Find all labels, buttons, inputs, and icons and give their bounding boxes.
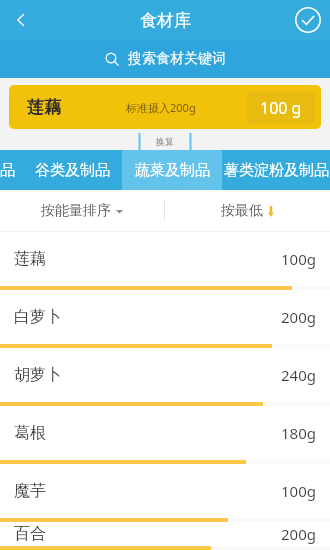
button[interactable]: 搜索食材关键词 — [0, 40, 330, 78]
staticText: 100g — [281, 249, 316, 269]
staticText: 白萝卜 — [14, 307, 62, 327]
staticText: 莲藕 — [14, 249, 46, 269]
button[interactable]: 胡萝卜 — [0, 348, 330, 406]
staticText: 莲藕 — [27, 97, 61, 118]
button[interactable]: 葛根 — [0, 406, 330, 464]
button[interactable]: 蔬菜及制品 — [122, 150, 222, 190]
staticText: 标准摄入200g — [126, 100, 196, 115]
staticText: 按最低 — [221, 202, 263, 220]
button[interactable]: 按能量排序 — [0, 190, 164, 232]
staticText: 180g — [281, 423, 316, 443]
button[interactable]: 换算 — [139, 133, 191, 150]
button[interactable]: Confirm — [286, 0, 330, 40]
staticText: 按能量排序 — [41, 202, 111, 220]
button[interactable]: 魔芋 — [0, 464, 330, 522]
staticText: 葛根 — [14, 423, 46, 443]
button[interactable]: 莲藕 — [0, 232, 330, 290]
staticText: 谷类及制品 — [35, 161, 110, 180]
button[interactable]: Back — [0, 0, 42, 40]
button[interactable]: 百合 — [0, 522, 330, 550]
staticText: 百合 — [14, 524, 46, 544]
staticText: 搜索食材关键词 — [128, 50, 226, 68]
button[interactable]: 按最低 — [165, 190, 330, 232]
button[interactable]: 品 — [0, 150, 22, 190]
staticText: 薯类淀粉及制品 — [224, 161, 329, 180]
staticText: 蔬菜及制品 — [135, 161, 210, 180]
button[interactable]: 莲藕 — [9, 85, 321, 129]
button[interactable]: 谷类及制品 — [22, 150, 122, 190]
staticText: 换算 — [156, 136, 174, 147]
staticText: 240g — [281, 365, 316, 385]
staticText: 200g — [281, 524, 316, 544]
staticText: 魔芋 — [14, 481, 46, 501]
staticText: 品 — [0, 161, 15, 180]
staticText: 200g — [281, 307, 316, 327]
button[interactable]: 薯类淀粉及制品 — [222, 150, 330, 190]
staticText: 100 g — [260, 97, 302, 119]
staticText: 100g — [281, 481, 316, 501]
button[interactable]: 白萝卜 — [0, 290, 330, 348]
staticText: 食材库 — [140, 10, 191, 31]
staticText: 胡萝卜 — [14, 365, 62, 385]
button[interactable]: 100 g — [247, 91, 315, 124]
